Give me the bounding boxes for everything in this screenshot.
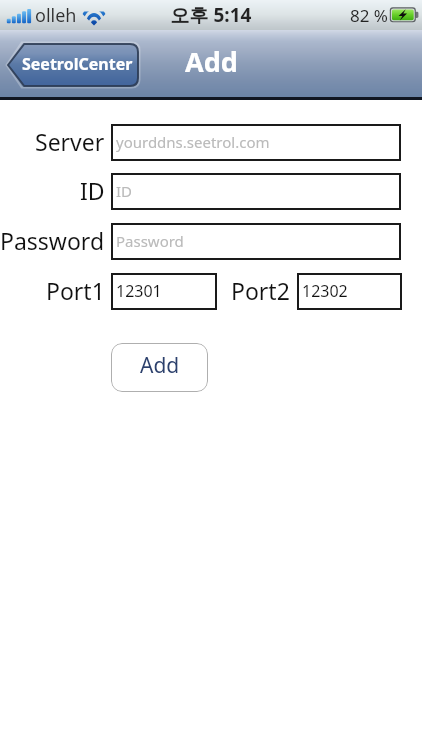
button[interactable]: yourddns.seetrol.com [111,124,401,161]
staticText: ID [80,175,105,206]
button[interactable]: Password [111,223,401,260]
staticText: Server [35,126,105,157]
staticText: olleh [35,3,77,28]
staticText: Password [116,231,184,251]
staticText: Port2 [231,275,290,306]
staticText: Add [140,351,180,380]
button[interactable]: 12302 [297,273,402,310]
staticText: 오후 5:14 [0,2,422,28]
button[interactable]: ID [111,173,401,210]
staticText: ID [116,181,133,201]
button[interactable]: 12301 [111,273,217,310]
staticText: 82 % [350,4,388,27]
button[interactable]: SeetrolCenter [6,42,140,88]
staticText: Port1 [46,275,105,306]
staticText: SeetrolCenter [22,53,133,75]
staticText: 12301 [116,280,162,302]
staticText: yourddns.seetrol.com [116,132,270,152]
staticText: Password [0,225,105,256]
staticText: 12302 [302,280,348,302]
button[interactable]: Add [111,343,208,392]
staticText: Add [185,43,238,80]
